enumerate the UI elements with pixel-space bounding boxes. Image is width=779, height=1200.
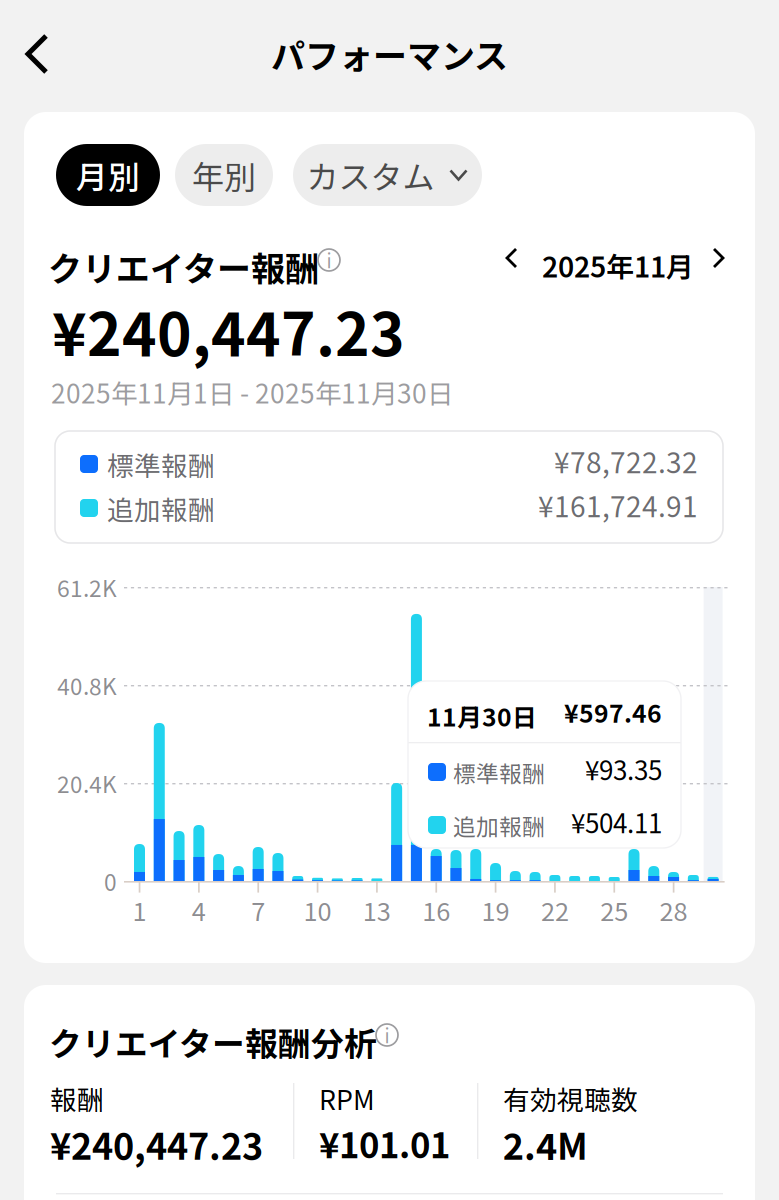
staticText: 有効視聴数 [503,1079,638,1118]
staticText: i [384,1021,389,1048]
staticText: クリエイター報酬分析 [49,1018,377,1065]
staticText: 1 [132,892,146,928]
staticText: 4 [192,892,206,928]
staticText: ¥93.35 [585,750,662,788]
button[interactable]: カスタム [293,144,482,206]
staticText: 2025年11月 [542,245,694,285]
staticText: 25 [600,892,628,928]
staticText: 20.4K [57,767,117,799]
staticText: カスタム [306,152,434,198]
staticText: 報酬 [50,1079,104,1118]
staticText: ¥240,447.23 [52,288,405,373]
staticText: 月別 [76,152,140,198]
staticText: ¥161,724.91 [538,485,698,525]
staticText: 10 [303,892,331,928]
button[interactable]: 次の月 [706,243,730,273]
staticText: ¥101.01 [319,1118,450,1168]
staticText: 16 [422,892,450,928]
button[interactable]: 前の月 [500,243,524,273]
staticText: 追加報酬 [107,489,215,528]
button[interactable]: 戻る [14,19,76,89]
staticText: 標準報酬 [453,756,545,789]
staticText: 2.4M [503,1118,588,1170]
staticText: 19 [481,892,509,928]
staticText: ¥240,447.23 [50,1118,263,1170]
staticText: 年別 [192,152,256,198]
staticText: 7 [251,892,265,928]
staticText: 22 [541,892,569,928]
staticText: ¥597.46 [564,694,662,730]
staticText: 61.2K [57,571,117,603]
staticText: 11月30日 [427,698,537,734]
staticText: 追加報酬 [453,809,545,842]
staticText: 0 [104,865,117,897]
staticText: 2025年11月1日 - 2025年11月30日 [51,373,453,411]
staticText: ¥504.11 [571,803,662,841]
staticText: 40.8K [57,669,117,701]
staticText: RPM [319,1079,375,1118]
staticText: ¥78,722.32 [554,441,698,481]
staticText: 13 [363,892,391,928]
staticText: クリエイター報酬 [48,242,319,291]
button[interactable]: 月別 [56,144,160,206]
staticText: 標準報酬 [107,445,215,484]
staticText: i [326,246,331,273]
button[interactable]: 年別 [175,144,273,206]
staticText: パフォーマンス [271,29,508,79]
staticText: 28 [660,892,688,928]
